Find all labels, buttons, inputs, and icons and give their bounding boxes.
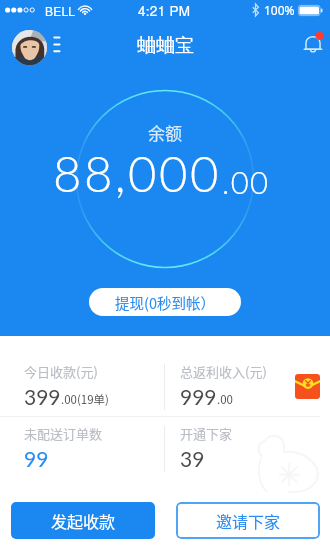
staticText: .00(19单) [61, 391, 110, 408]
staticText: .00 [222, 163, 270, 200]
staticText: 开通下家 [180, 424, 233, 443]
staticText: 999 [180, 384, 217, 409]
staticText: 39 [180, 446, 205, 471]
button[interactable]: 今日收款(元) [24, 362, 110, 409]
staticText: 余额 [148, 120, 182, 145]
staticText: BELL [45, 2, 76, 19]
staticText: .00 [217, 391, 233, 408]
button[interactable]: Red packet [295, 374, 320, 399]
staticText: 4:21 PM [138, 1, 191, 20]
button[interactable]: 提现(0秒到帐） [89, 288, 241, 316]
staticText: 100% [264, 2, 295, 18]
button[interactable]: 发起收款 [11, 502, 155, 539]
staticText: 邀请下家 [216, 509, 281, 532]
staticText: 发起收款 [51, 509, 116, 532]
button[interactable]: Profile [12, 30, 47, 65]
button[interactable]: 开通下家 [180, 424, 233, 471]
staticText: 88,000 [53, 144, 221, 203]
button[interactable]: Notifications [302, 32, 324, 54]
button[interactable]: Menu [50, 32, 64, 56]
staticText: 99 [24, 446, 49, 471]
staticText: 未配送订单数 [24, 424, 103, 443]
staticText: 提现(0秒到帐） [115, 292, 215, 313]
button[interactable]: 邀请下家 [176, 502, 320, 539]
staticText: 399 [24, 384, 61, 409]
staticText: 今日收款(元) [24, 362, 98, 381]
button[interactable]: 总返利收入(元) [180, 362, 267, 409]
staticText: 蛐蛐宝 [137, 34, 194, 58]
button[interactable]: 未配送订单数 [24, 424, 103, 471]
staticText: 总返利收入(元) [180, 362, 267, 381]
